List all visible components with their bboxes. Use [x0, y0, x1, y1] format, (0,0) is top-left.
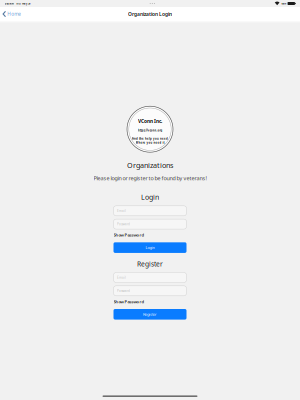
staticText: 100%: [281, 2, 286, 5]
button[interactable]: Show Password: [113, 233, 144, 237]
button[interactable]: Email: [113, 206, 186, 216]
staticText: Organization Login: [128, 11, 172, 17]
button[interactable]: Show Password: [113, 299, 144, 304]
staticText: Password: [117, 289, 130, 293]
staticText: Login: [141, 192, 159, 202]
staticText: Where you need it: [135, 141, 164, 144]
staticText: Password: [117, 222, 130, 226]
staticText: Login: [145, 245, 154, 250]
staticText: Home: [7, 11, 21, 17]
staticText: Organizations: [127, 160, 173, 170]
staticText: https://vconn.org: [137, 129, 162, 132]
staticText: Show Password: [113, 232, 144, 238]
staticText: Email: [117, 209, 126, 213]
staticText: Register: [137, 259, 163, 268]
staticText: Show Password: [113, 299, 144, 304]
button[interactable]: Password: [113, 286, 186, 296]
staticText: Register: [143, 312, 157, 317]
staticText: Please login or register to be found by …: [93, 174, 206, 182]
staticText: 8:45 AM: [4, 2, 13, 5]
button[interactable]: Register: [113, 309, 186, 320]
button[interactable]: Email: [113, 272, 186, 282]
button[interactable]: Home: [0, 7, 24, 21]
staticText: Email: [117, 275, 126, 280]
staticText: Find the help you need: [132, 137, 168, 140]
button[interactable]: Password: [113, 219, 186, 229]
staticText: VConn Inc.: [138, 118, 162, 124]
staticText: Thu May 30: [16, 2, 30, 5]
button[interactable]: Login: [113, 242, 186, 253]
